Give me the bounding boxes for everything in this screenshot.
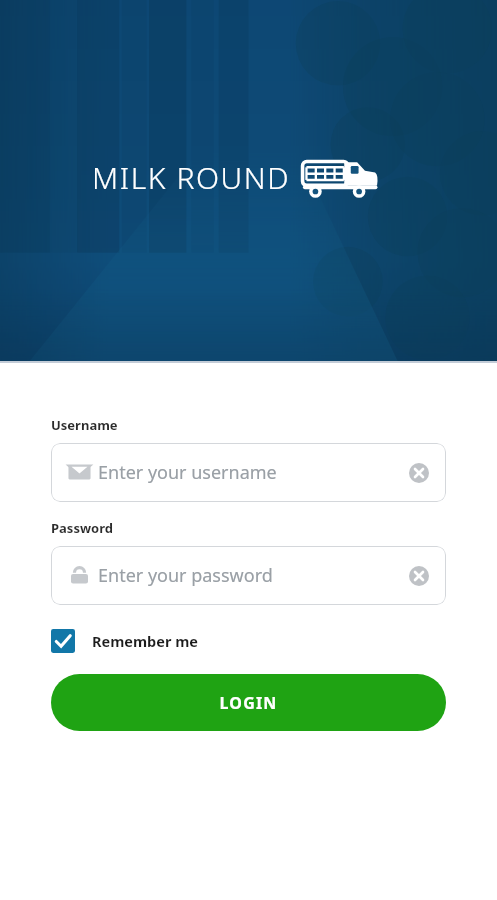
button[interactable]: Enter your password [51, 546, 446, 605]
staticText: Password [51, 519, 113, 537]
staticText: Enter your password [98, 563, 409, 588]
staticText: Remember me [92, 631, 198, 651]
button[interactable]: Clear text [409, 463, 429, 483]
button[interactable]: Remember me [51, 627, 198, 655]
staticText: Username [51, 416, 118, 434]
button[interactable]: LOGIN [51, 674, 446, 731]
button[interactable]: Clear text [409, 566, 429, 586]
other: Milk float logo [301, 156, 379, 198]
staticText: LOGIN [219, 692, 278, 714]
button[interactable]: Enter your username [51, 443, 446, 502]
staticText: MILK ROUND [92, 157, 291, 198]
staticText: Enter your username [98, 460, 409, 485]
